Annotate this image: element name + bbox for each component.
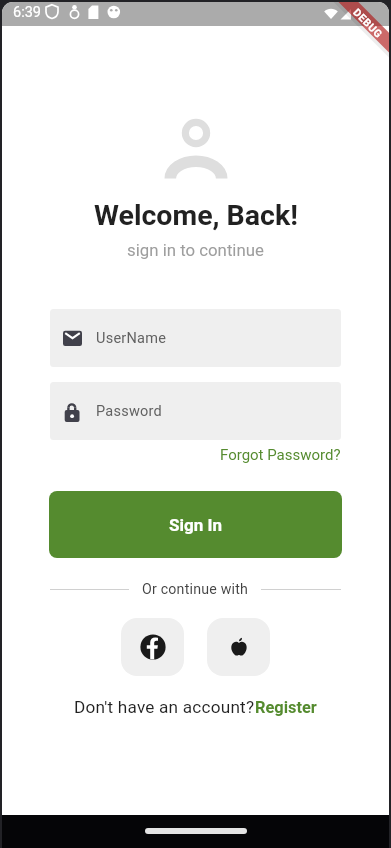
staticText: sign in to continue (127, 240, 264, 260)
button[interactable]: Sign In (49, 491, 342, 558)
staticText: Sign In (169, 515, 222, 535)
staticText: 6:39 (13, 4, 41, 21)
button[interactable]: Register (255, 698, 317, 717)
staticText: Welcome, Back! (94, 199, 298, 232)
staticText: UserName (96, 330, 167, 347)
staticText: DEBUG (351, 6, 385, 40)
button[interactable]: Password (50, 382, 341, 440)
button[interactable] (207, 618, 270, 676)
staticText: Or continue with (142, 581, 248, 598)
staticText: Don't have an account? (74, 697, 255, 717)
button[interactable] (121, 618, 184, 676)
staticText: Password (96, 403, 163, 420)
button[interactable]: Forgot Password? (220, 446, 341, 464)
button[interactable]: UserName (50, 309, 341, 367)
